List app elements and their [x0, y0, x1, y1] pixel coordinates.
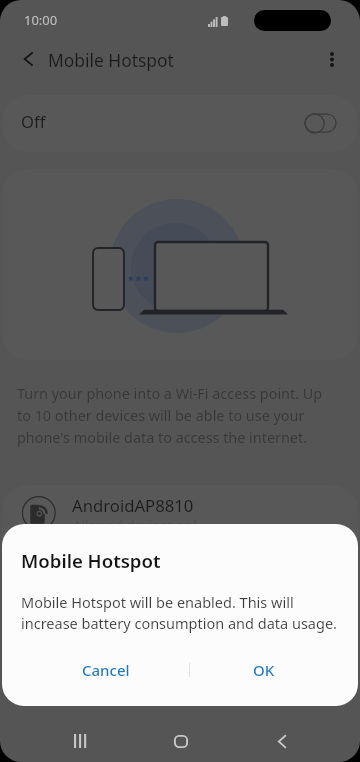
button[interactable]: OK: [189, 650, 338, 690]
staticText: Mobile Hotspot: [48, 48, 174, 72]
staticText: Turn your phone into a Wi-Fi access poin…: [17, 384, 337, 447]
staticText: Mobile Hotspot: [21, 548, 161, 573]
button[interactable]: Home: [157, 717, 205, 762]
button[interactable]: AndroidAP8810: [2, 485, 358, 565]
button[interactable]: Back: [258, 717, 306, 762]
button[interactable]: Off: [2, 95, 358, 152]
staticText: Off: [21, 110, 46, 133]
staticText: AndroidAP8810: [72, 494, 194, 517]
staticText: 10:00: [24, 11, 58, 29]
staticText: Mobile Hotspot will be enabled. This wil…: [21, 592, 346, 633]
button[interactable]: More options: [308, 35, 356, 83]
button[interactable]: Recent apps: [56, 717, 104, 762]
button[interactable]: Cancel: [22, 650, 189, 690]
staticText: Allowed devices only: [73, 517, 204, 535]
staticText: Cancel: [82, 660, 130, 680]
staticText: OK: [253, 660, 275, 680]
button[interactable]: Navigate up: [4, 35, 52, 83]
